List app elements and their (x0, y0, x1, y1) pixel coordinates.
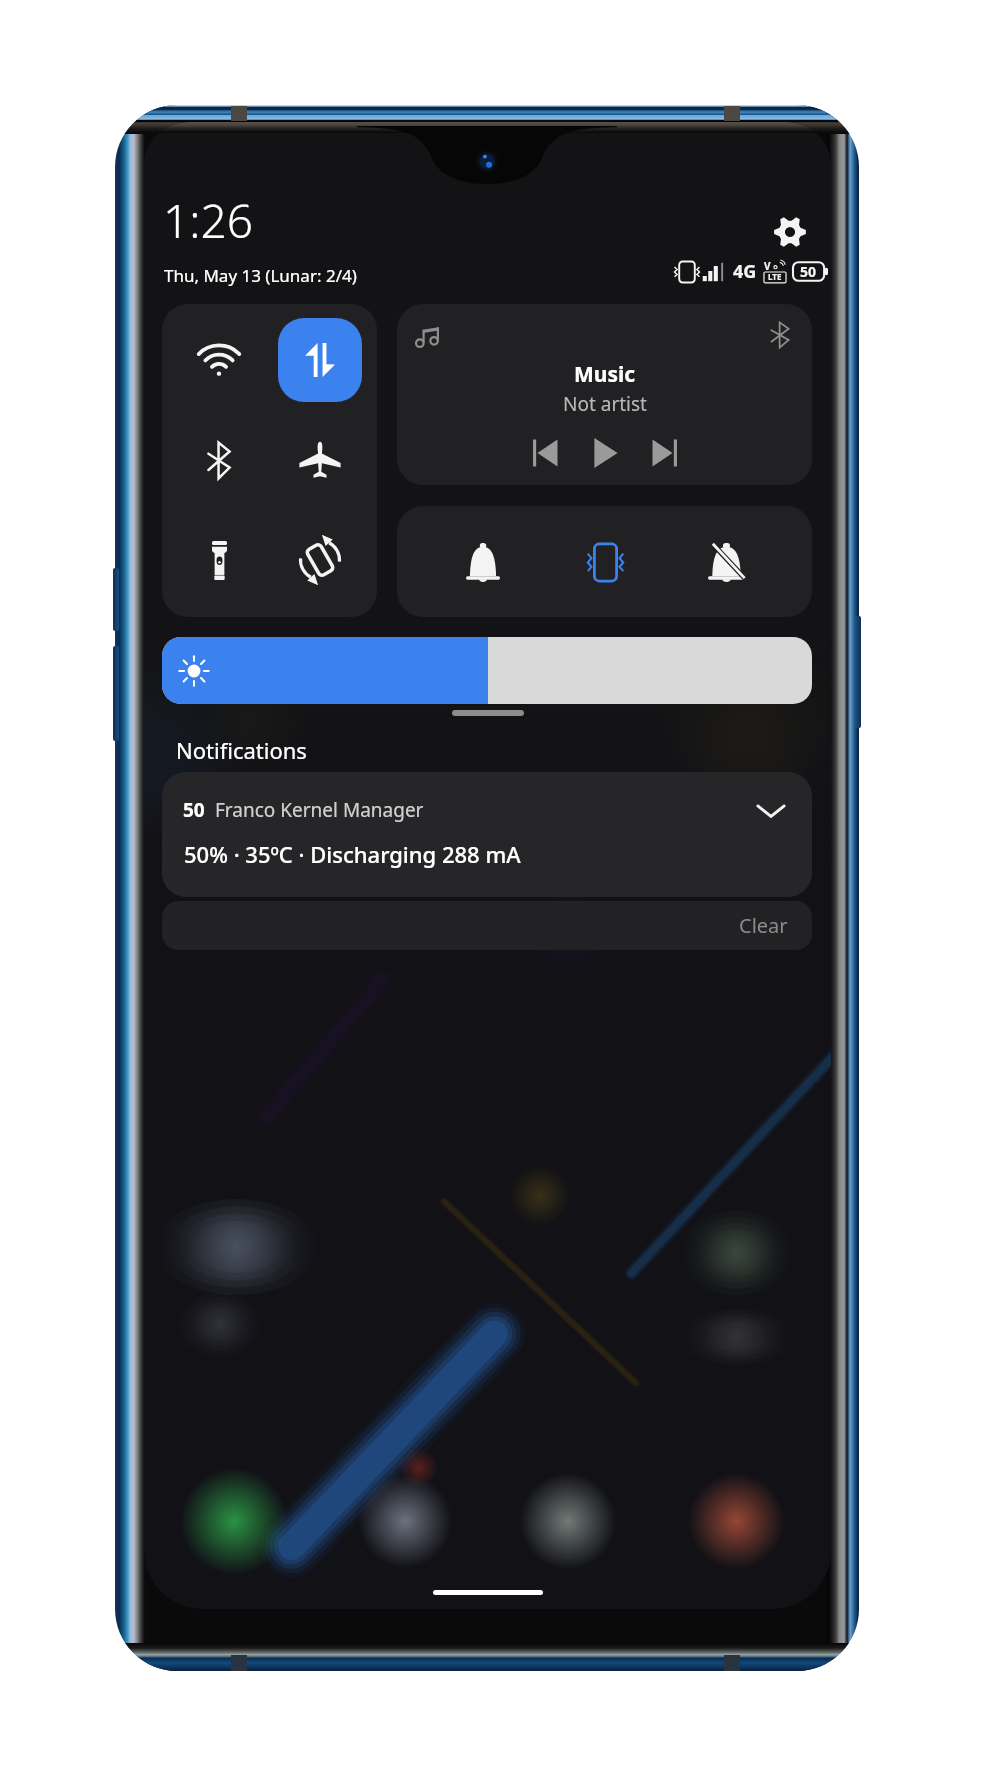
button[interactable]: Mobile data (278, 318, 362, 402)
staticText: V (764, 259, 771, 273)
button[interactable]: Wi-Fi (177, 318, 261, 402)
staticText: 50 (800, 262, 817, 281)
button[interactable]: Auto rotate (278, 518, 362, 602)
staticText: Clear (739, 912, 788, 939)
staticText: LTE (768, 271, 782, 282)
staticText: Franco Kernel Manager (215, 797, 424, 823)
button[interactable]: 50 (162, 772, 812, 897)
button[interactable]: Bluetooth (177, 418, 261, 502)
button[interactable]: Play (580, 428, 630, 478)
button[interactable]: Brightness (162, 637, 812, 704)
button[interactable]: Ring (447, 526, 519, 598)
button[interactable]: Music (397, 304, 812, 485)
staticText: 50% · 35ºC · Discharging 288 mA (184, 839, 521, 869)
staticText: 50 (183, 797, 205, 823)
button[interactable]: Airplane mode (278, 418, 362, 502)
staticText: Notifications (176, 735, 307, 765)
staticText: Not artist (563, 391, 647, 417)
button[interactable]: Next (640, 428, 690, 478)
staticText: Music (574, 360, 636, 389)
button[interactable]: Vibrate (569, 526, 641, 598)
button[interactable]: Clear (162, 901, 812, 950)
button[interactable]: Silent (690, 526, 762, 598)
button[interactable]: Expand (746, 786, 796, 836)
staticText: Thu, May 13 (Lunar: 2/4) (164, 264, 357, 287)
button[interactable]: Previous (520, 428, 570, 478)
staticText: 4G (733, 259, 757, 284)
button[interactable]: Flashlight (177, 518, 261, 602)
button[interactable]: Settings (768, 210, 812, 254)
staticText: 1:26 (163, 189, 254, 252)
